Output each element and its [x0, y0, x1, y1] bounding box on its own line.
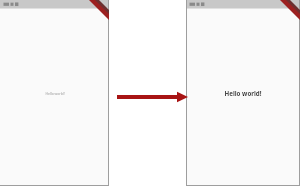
- staticText: Hello world!: [45, 91, 65, 96]
- staticText: Hello world!: [224, 89, 262, 97]
- button[interactable]: Hello world!: [0, 0, 109, 186]
- other: Transformation arrow: [0, 0, 300, 192]
- button[interactable]: Hello world!: [186, 0, 300, 186]
